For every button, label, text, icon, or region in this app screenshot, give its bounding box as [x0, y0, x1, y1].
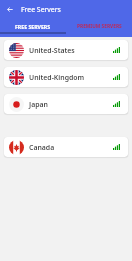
staticText: Japan — [29, 100, 48, 109]
button[interactable]: Japan — [4, 94, 128, 114]
staticText: PREMIUM SERVERS — [77, 23, 122, 30]
button[interactable]: FREE SERVERS — [0, 19, 66, 33]
button[interactable]: United-States — [4, 40, 128, 60]
staticText: Free Servers — [21, 5, 61, 14]
staticText: Canada — [29, 143, 55, 152]
staticText: United-Kingdom — [29, 73, 85, 82]
staticText: United-States — [29, 46, 75, 55]
button[interactable]: United-Kingdom — [4, 67, 128, 87]
button[interactable]: Back — [0, 0, 19, 19]
button[interactable]: PREMIUM SERVERS — [66, 19, 132, 33]
staticText: FREE SERVERS — [15, 23, 51, 30]
button[interactable]: Canada — [4, 137, 128, 157]
